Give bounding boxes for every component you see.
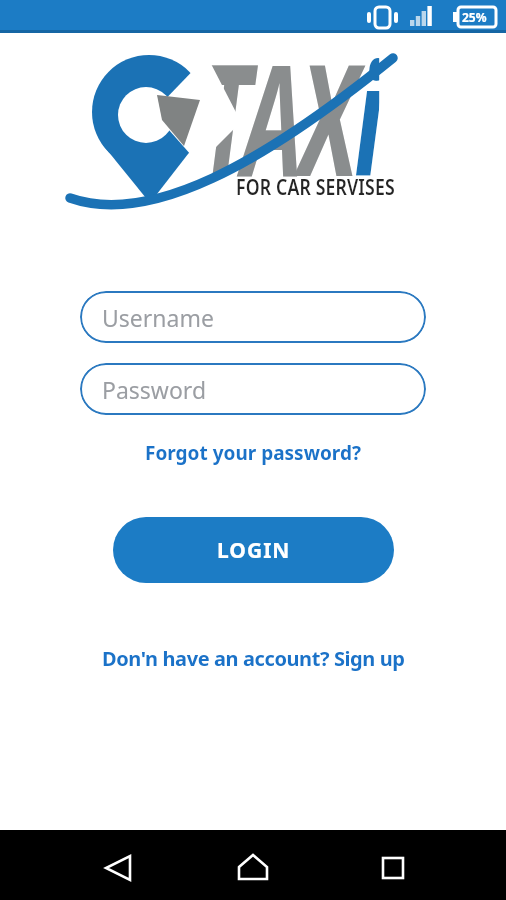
button[interactable] — [215, 840, 291, 890]
button[interactable] — [355, 840, 431, 890]
staticText: Forgot your password? — [145, 440, 361, 466]
button[interactable]: Don'n have an account? Sign up — [0, 645, 506, 672]
button[interactable]: LOGIN — [113, 517, 394, 583]
button[interactable]: Password — [80, 363, 426, 415]
button[interactable] — [80, 840, 156, 890]
staticText: LOGIN — [217, 536, 291, 565]
button[interactable]: Forgot your password? — [0, 440, 506, 466]
staticText: Password — [102, 374, 207, 405]
staticText: FOR CAR SERVISES — [236, 173, 396, 202]
button[interactable]: Username — [80, 291, 426, 343]
staticText: 25% — [462, 9, 487, 25]
staticText: Don'n have an account? Sign up — [102, 645, 405, 672]
staticText: TAXi — [200, 10, 379, 210]
staticText: Username — [102, 302, 214, 333]
